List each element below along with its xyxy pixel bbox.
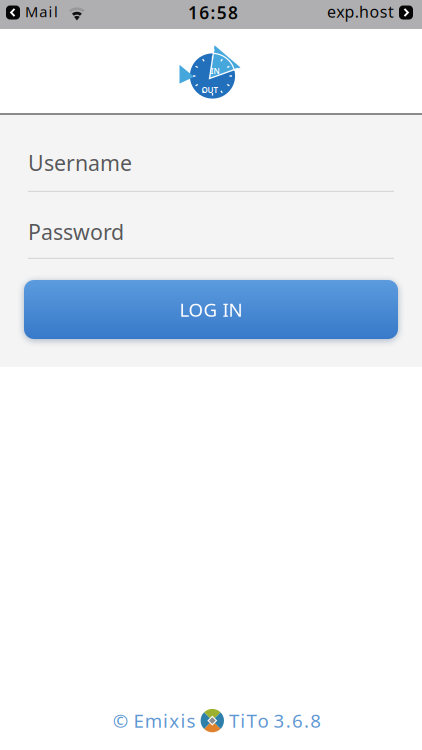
staticText: e [327,1,336,22]
staticText: 6 [292,708,303,733]
staticText: i [240,708,245,733]
staticText: s [380,1,388,22]
staticText: OUT [201,85,218,95]
staticText: i [49,2,53,21]
staticText: a [39,2,47,21]
staticText: x [169,708,179,733]
staticText: x [336,1,344,22]
staticText: . [286,708,291,733]
staticText: T [229,708,239,733]
button[interactable]: Username [28,148,394,192]
staticText: l [54,2,58,21]
staticText: t [388,1,394,22]
button[interactable]: Password [28,217,394,259]
staticText: IN [210,66,219,76]
staticText: M [25,2,38,21]
staticText: 8 [310,708,321,733]
staticText: . [355,1,359,22]
staticText: LOG IN [179,297,242,322]
staticText: 1 [188,1,198,24]
staticText: Password [28,217,124,246]
button[interactable]: LOG IN [24,280,398,339]
staticText: p [344,1,354,22]
staticText: o [258,708,269,733]
staticText: 6 [199,1,209,24]
staticText: © [113,708,129,733]
staticText: h [359,1,369,22]
staticText: 8 [228,1,238,24]
staticText: Username [28,148,132,177]
staticText: . [304,708,309,733]
staticText: T [246,708,256,733]
staticText: m [145,708,162,733]
staticText: : [210,1,215,24]
staticText: i [180,708,185,733]
staticText: i [163,708,168,733]
button[interactable]: Forward to exp.host [327,2,413,23]
button[interactable]: Back to Mail [6,3,58,22]
staticText: 3 [273,708,284,733]
staticText: E [134,708,144,733]
staticText: s [187,708,196,733]
staticText: 5 [217,1,227,24]
staticText: o [369,1,379,22]
